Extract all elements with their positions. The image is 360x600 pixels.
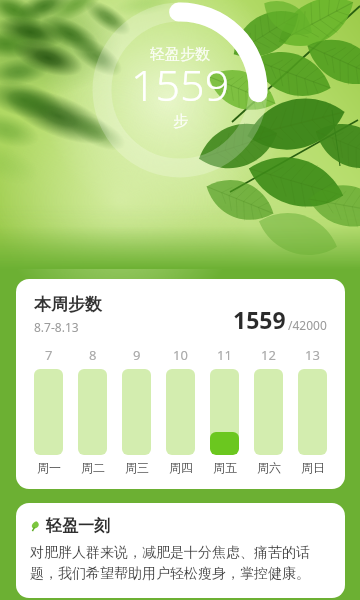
staticText: 周三 [125,460,149,475]
staticText: 周日 [301,460,325,475]
staticText: 周一 [37,460,61,475]
staticText: 对肥胖人群来说，减肥是十分焦虑、痛苦的话题，我们希望帮助用户轻松瘦身，掌控健康。 [30,544,337,582]
staticText: 11 [217,346,232,364]
staticText: 13 [305,346,320,364]
staticText: 12 [261,346,276,364]
staticText: 8 [89,346,97,364]
staticText: 本周步数 [34,294,102,315]
staticText: 周五 [213,460,237,475]
button[interactable]: 本周步数 [16,279,345,489]
staticText: /42000 [288,317,327,333]
staticText: 10 [173,346,188,364]
staticText: 9 [133,346,141,364]
staticText: 8.7-8.13 [34,319,79,335]
staticText: 7 [45,346,53,364]
staticText: 周二 [81,460,105,475]
staticText: 轻盈一刻 [46,516,110,536]
staticText: 周六 [257,460,281,475]
staticText: 轻盈步数 [150,45,210,64]
staticText: 步 [173,112,188,131]
staticText: 1559 [233,304,286,335]
staticText: 周四 [169,460,193,475]
button[interactable]: 轻盈一刻 [16,503,345,598]
staticText: 1559 [131,55,230,114]
